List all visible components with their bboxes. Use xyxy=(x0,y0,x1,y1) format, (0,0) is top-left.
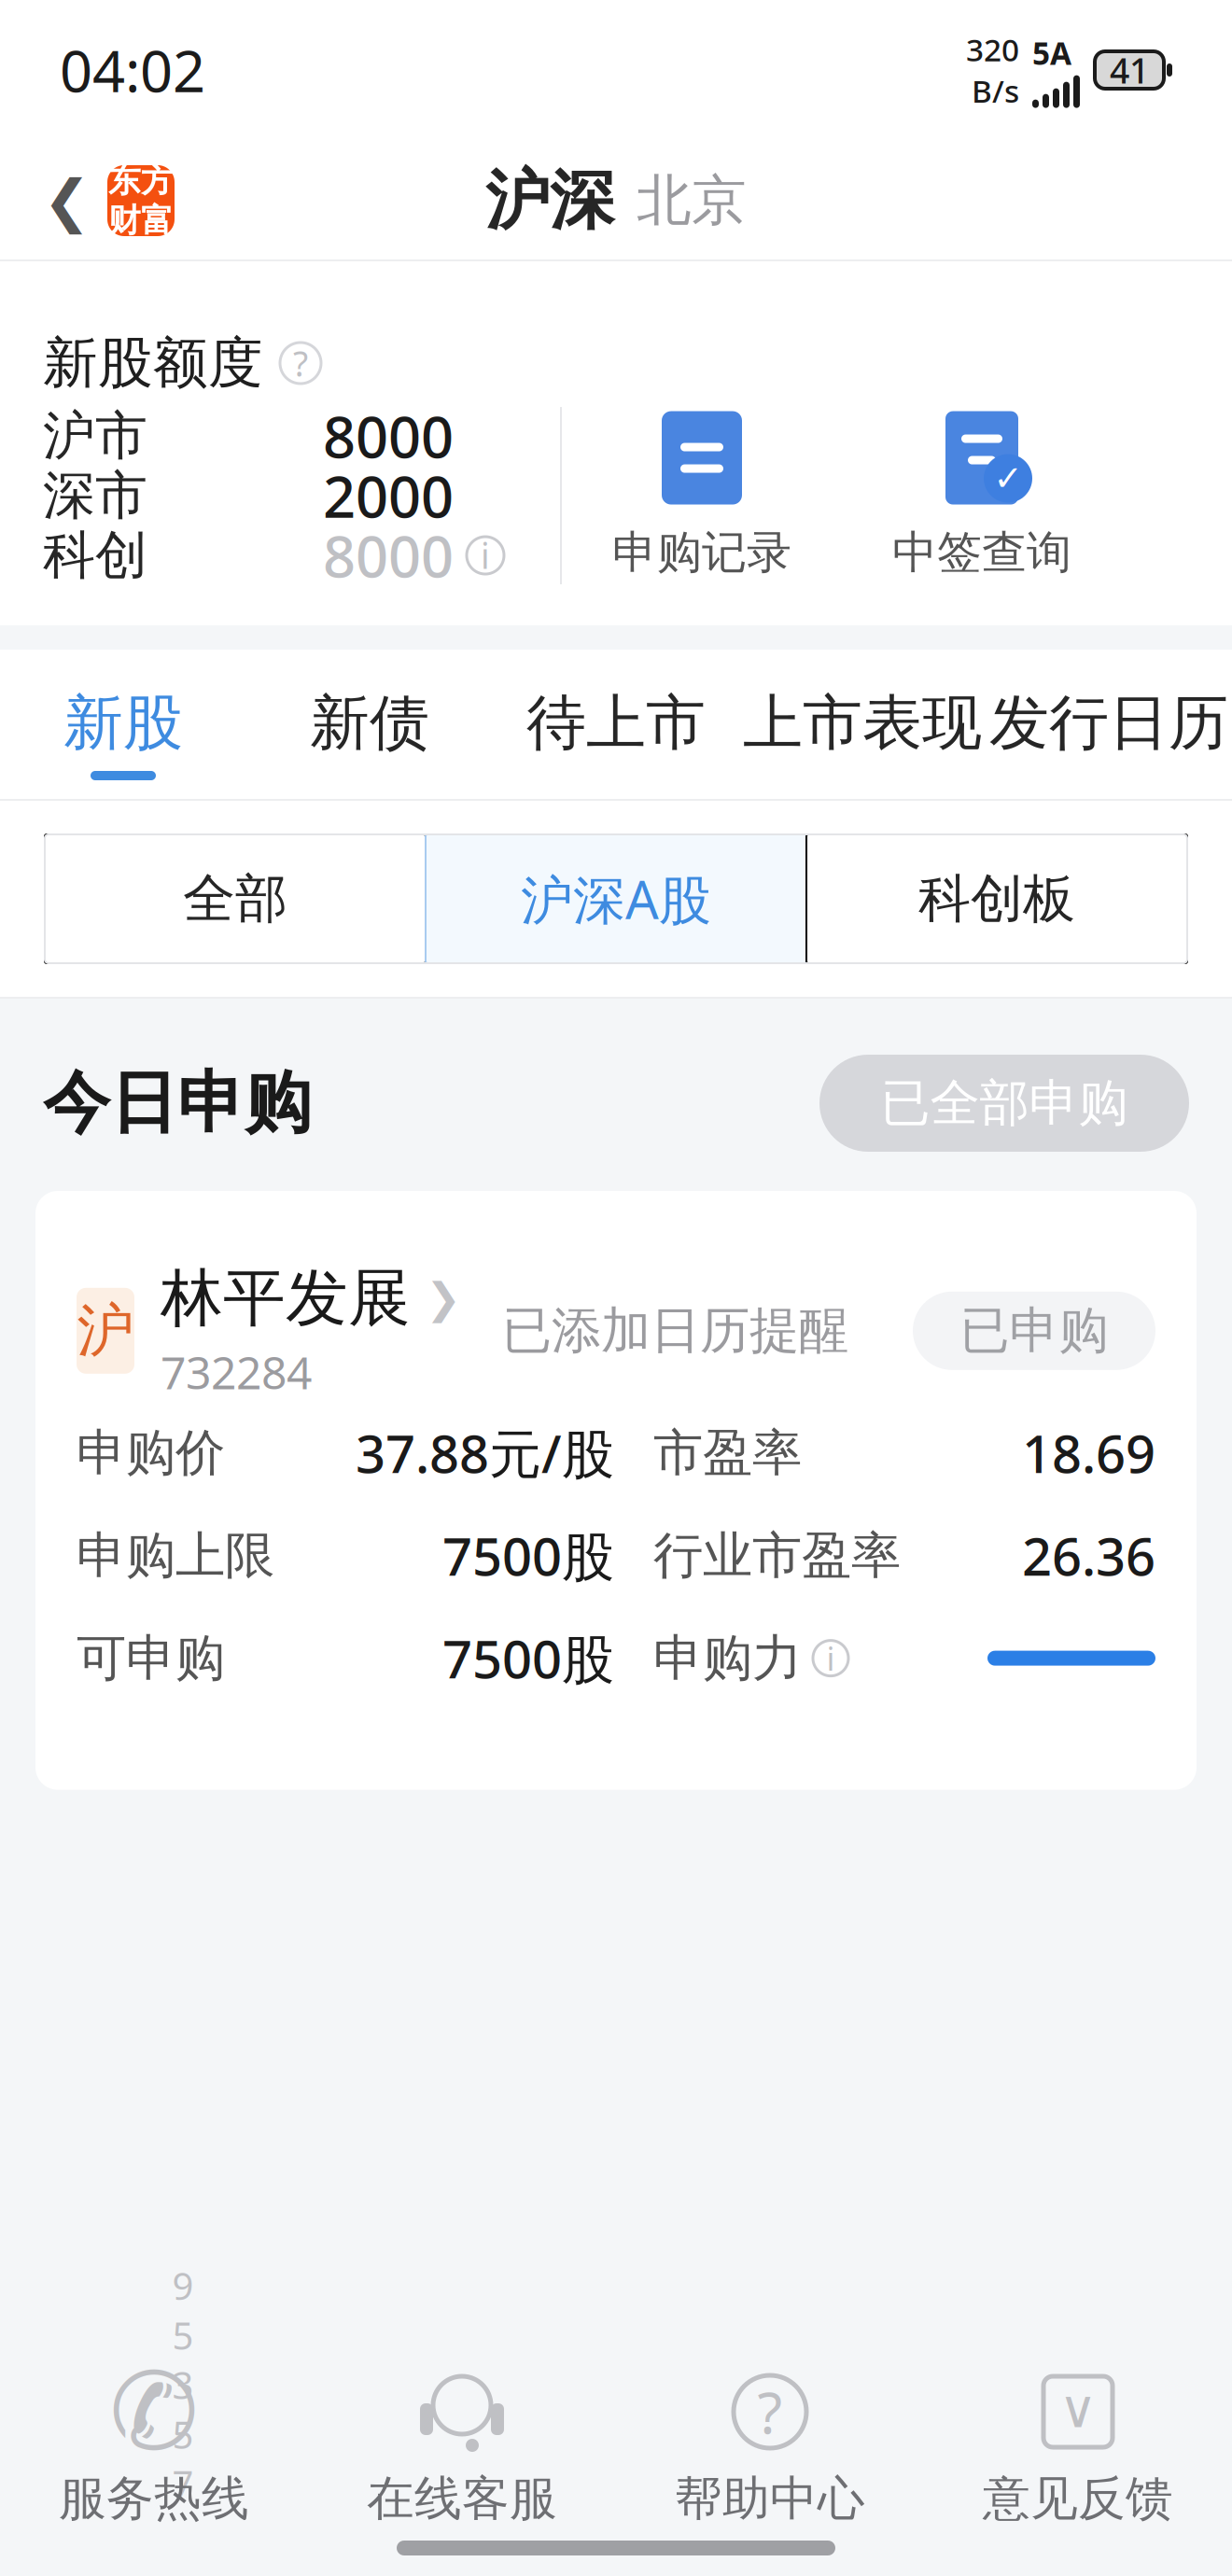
staticText: 18.69 xyxy=(1022,1418,1155,1488)
staticText: 申购记录 xyxy=(612,525,791,580)
button[interactable]: 林平发展 xyxy=(161,1260,461,1336)
staticText: 沪深 xyxy=(485,161,614,240)
staticText: 意见反馈 xyxy=(983,2470,1173,2528)
staticText: 8000 xyxy=(323,517,454,593)
staticText: 已申购 xyxy=(960,1300,1108,1361)
staticText: 沪市 xyxy=(43,404,147,468)
staticText: 26.36 xyxy=(1022,1521,1155,1590)
staticText: ? xyxy=(293,340,308,386)
staticText: 新债 xyxy=(310,686,429,760)
staticText: 深市 xyxy=(43,463,147,528)
staticText: 7500股 xyxy=(442,1623,614,1693)
staticText: ∨ xyxy=(1059,2379,1097,2439)
staticText: 行业市盈率 xyxy=(653,1525,901,1586)
staticText: 帮助中心 xyxy=(675,2470,865,2528)
staticText: 5A xyxy=(1032,32,1071,73)
button[interactable]: 新股 xyxy=(0,650,246,799)
button[interactable]: 发行日历 xyxy=(986,650,1232,799)
staticText: 东方 xyxy=(108,161,174,201)
button[interactable]: ∨ xyxy=(924,2365,1232,2528)
staticText: ? xyxy=(757,2374,783,2450)
staticText: 上市表现 xyxy=(743,686,982,760)
button[interactable]: 科创板 xyxy=(806,834,1187,963)
button[interactable]: ✆ xyxy=(0,2365,308,2528)
button[interactable]: 已全部申购 xyxy=(819,1055,1189,1152)
staticText: 待上市 xyxy=(526,686,706,760)
button[interactable]: ✓ xyxy=(842,411,1122,580)
button[interactable]: 全部 xyxy=(45,834,426,963)
staticText: 新股额度 xyxy=(43,329,263,397)
staticText: 04:02 xyxy=(60,32,205,108)
button[interactable]: 上市表现 xyxy=(739,650,986,799)
staticText: 服务热线 xyxy=(59,2470,249,2528)
staticText: i xyxy=(826,1637,835,1680)
staticText: 中签查询 xyxy=(892,525,1071,580)
staticText: ❮ xyxy=(43,168,91,233)
staticText: 沪 xyxy=(77,1296,134,1366)
staticText: 37.88元/股 xyxy=(356,1418,614,1488)
staticText: 已全部申购 xyxy=(881,1073,1128,1134)
button[interactable]: 在线客服 xyxy=(308,2365,616,2528)
staticText: 41 xyxy=(1110,47,1149,93)
staticText: 市盈率 xyxy=(653,1422,802,1483)
staticText: 2000 xyxy=(323,458,454,534)
button[interactable]: 申购记录 xyxy=(562,411,842,580)
button[interactable]: 待上市 xyxy=(493,650,739,799)
staticText: ✓ xyxy=(994,459,1022,498)
staticText: B/s xyxy=(972,70,1019,111)
button[interactable]: 新债 xyxy=(246,650,493,799)
staticText: 今日申购 xyxy=(43,1062,312,1144)
staticText: 林平发展 xyxy=(161,1260,411,1336)
button[interactable]: ? xyxy=(616,2365,924,2528)
staticText: 申购上限 xyxy=(77,1525,274,1586)
staticText: 科创 xyxy=(43,523,147,587)
staticText: 可申购 xyxy=(77,1628,225,1689)
staticText: 新股 xyxy=(63,686,183,760)
staticText: 在线客服 xyxy=(367,2470,557,2528)
staticText: 申购力 xyxy=(653,1628,802,1689)
staticText: 申购价 xyxy=(77,1422,225,1483)
staticText: 320 xyxy=(966,29,1019,70)
staticText: 8000 xyxy=(323,398,454,474)
staticText: 全部 xyxy=(183,867,287,931)
staticText: i xyxy=(481,532,490,578)
button[interactable]: 北京 xyxy=(637,167,747,234)
staticText: ✆ xyxy=(109,2351,199,2472)
staticText: 发行日历 xyxy=(989,686,1228,760)
staticText: 沪深A股 xyxy=(521,864,711,934)
staticText: 95357 xyxy=(172,2261,194,2509)
button[interactable]: 返回 xyxy=(0,140,175,261)
staticText: 7500股 xyxy=(442,1521,614,1590)
staticText: 732284 xyxy=(161,1342,312,1401)
staticText: ❯ xyxy=(426,1274,461,1322)
button[interactable]: 已申购 xyxy=(913,1292,1155,1370)
staticText: 科创板 xyxy=(918,867,1075,931)
staticText: 北京 xyxy=(637,167,747,234)
button[interactable]: 沪深A股 xyxy=(426,834,806,963)
staticText: 财富 xyxy=(108,201,174,240)
button[interactable]: 额度说明 xyxy=(280,343,321,384)
staticText: 已添加日历提醒 xyxy=(502,1300,848,1361)
